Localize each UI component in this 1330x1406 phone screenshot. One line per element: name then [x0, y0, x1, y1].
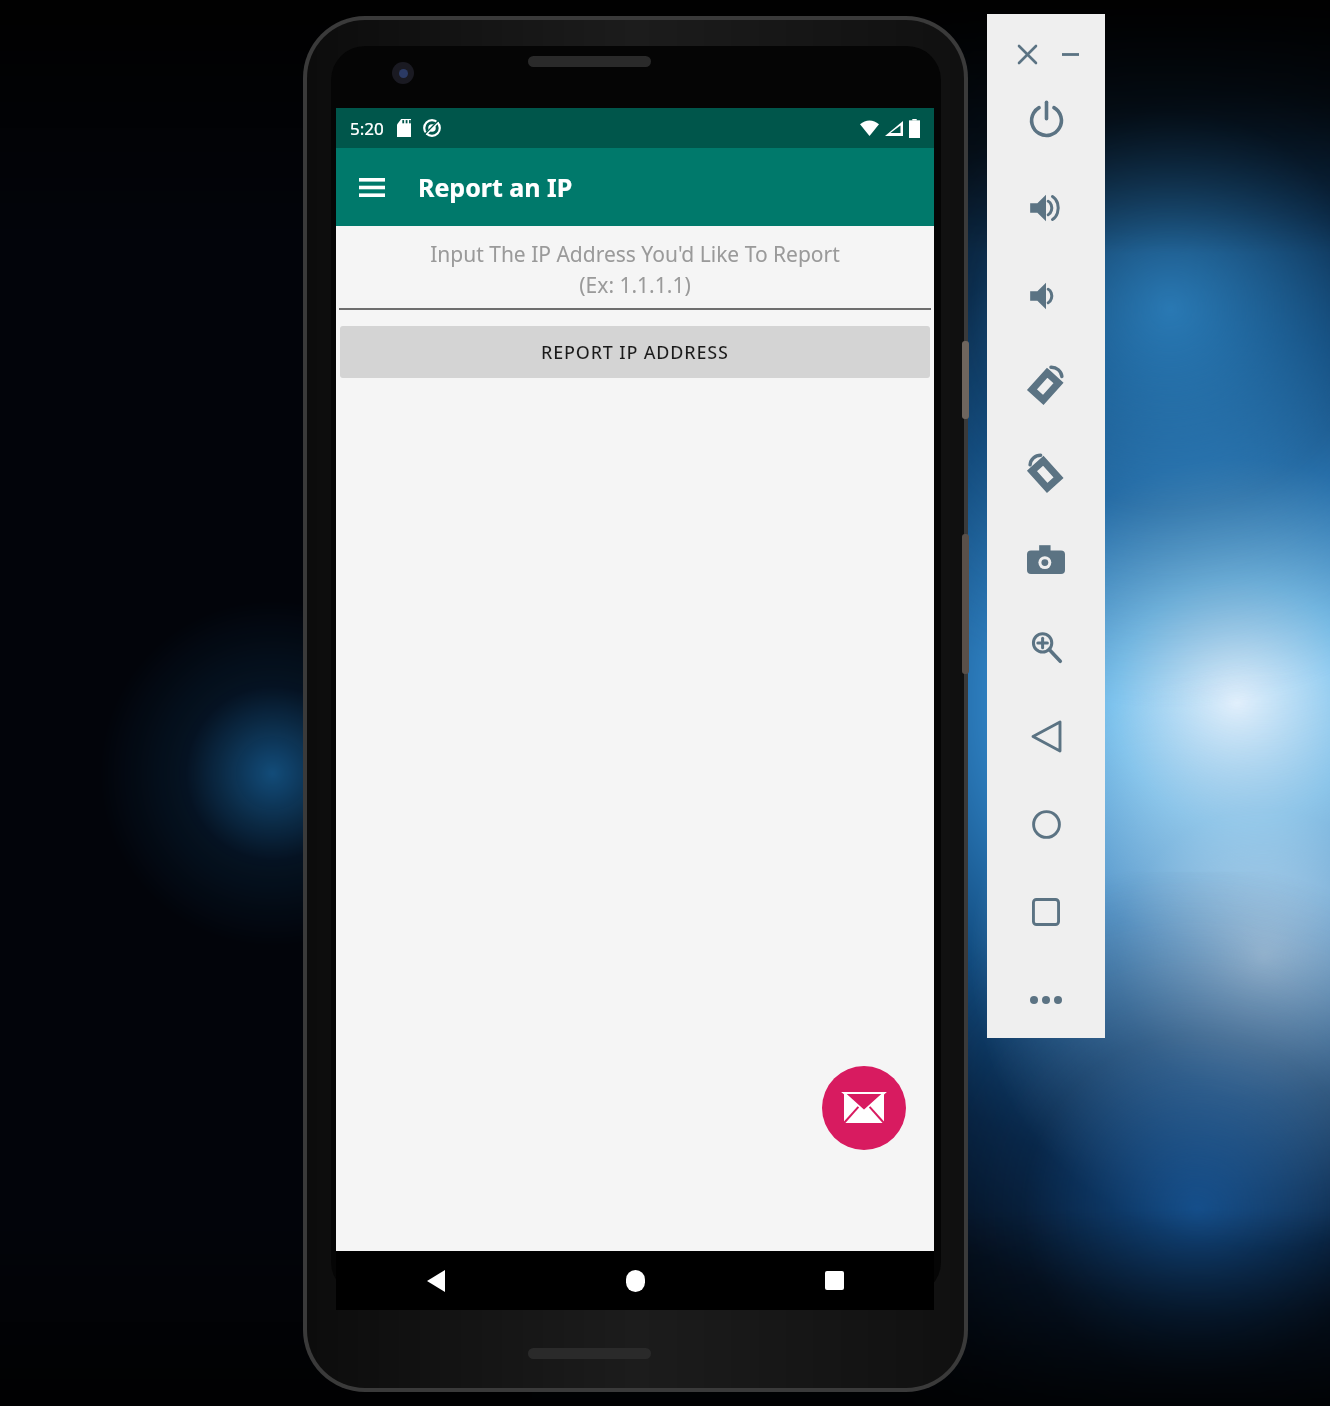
staticText: Input The IP Address You'd Like To Repor… [346, 240, 924, 299]
staticText: 5:20 [350, 117, 384, 140]
button[interactable]: Rotate left [1004, 356, 1088, 412]
button[interactable]: Recent apps [735, 1251, 934, 1310]
staticText: Report an IP [418, 170, 573, 204]
button[interactable]: Overview [1004, 884, 1088, 940]
button[interactable]: Power [1004, 92, 1088, 148]
button[interactable]: Rotate right [1004, 444, 1088, 500]
button[interactable]: Back [336, 1251, 536, 1310]
button[interactable]: Back [1004, 708, 1088, 764]
button[interactable]: Open navigation drawer [344, 159, 400, 215]
button[interactable]: Volume up [1004, 180, 1088, 236]
button[interactable]: Minimize [1048, 32, 1092, 76]
button[interactable]: Zoom [1004, 619, 1088, 675]
button[interactable]: Home [536, 1251, 735, 1310]
button[interactable]: Input The IP Address You'd Like To Repor… [336, 226, 934, 310]
button[interactable]: More [1004, 972, 1088, 1028]
button[interactable]: Home [1004, 796, 1088, 852]
button[interactable]: Take screenshot [1004, 531, 1088, 587]
button[interactable]: Send email report [822, 1066, 906, 1150]
button[interactable]: REPORT IP ADDRESS [340, 326, 930, 378]
staticText: REPORT IP ADDRESS [541, 340, 729, 365]
button[interactable]: Close [1005, 32, 1049, 76]
button[interactable]: Volume down [1004, 268, 1088, 324]
